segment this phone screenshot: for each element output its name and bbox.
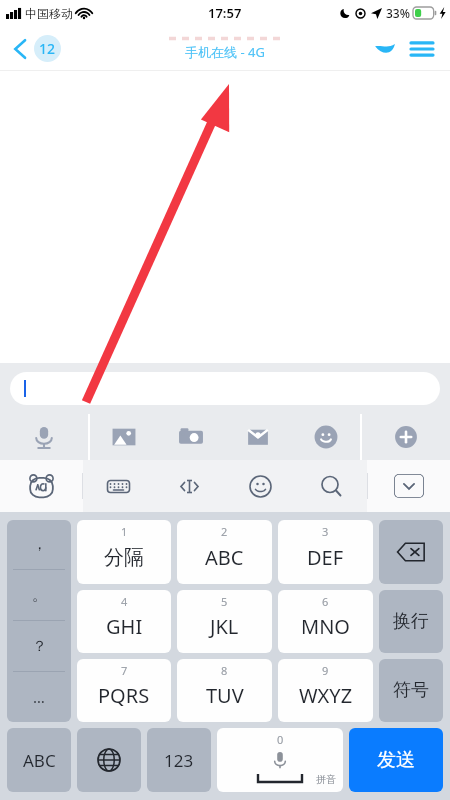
button[interactable]: … (7, 672, 71, 722)
staticText: 符号 (393, 679, 429, 702)
button[interactable]: ， (7, 520, 71, 569)
staticText: MNO (301, 613, 350, 640)
staticText: 123 (164, 749, 194, 772)
staticText: 发送 (377, 748, 415, 772)
button[interactable]: Send (349, 728, 443, 792)
button[interactable]: Search (296, 460, 367, 512)
button[interactable]: 换行 (379, 590, 443, 653)
button[interactable]: Menu (406, 33, 438, 65)
staticText: 3 (322, 524, 329, 539)
button[interactable]: 符号 (379, 659, 443, 722)
staticText: 2 (221, 524, 228, 539)
button[interactable]: Back, 12 unread (10, 31, 65, 66)
button[interactable]: 1 (77, 520, 171, 584)
staticText: … (33, 687, 45, 707)
staticText: 12 (39, 39, 56, 58)
button[interactable]: 5 (177, 590, 272, 653)
button[interactable]: 2 (177, 520, 272, 584)
staticText: 9 (322, 663, 329, 678)
staticText: 17:57 (208, 4, 242, 22)
button[interactable]: ？ (7, 621, 71, 671)
staticText: 拼音 (316, 773, 336, 786)
staticText: 。 (32, 586, 47, 605)
staticText: PQRS (98, 682, 150, 709)
button[interactable]: 8 (177, 659, 272, 722)
button[interactable]: 6 (278, 590, 373, 653)
button[interactable]: Emoji (292, 414, 360, 460)
button[interactable]: 4 (77, 590, 171, 653)
button[interactable]: Keyboard (83, 460, 154, 512)
staticText: 0 (277, 732, 284, 747)
staticText: ABC (205, 544, 244, 571)
button[interactable]: Move cursor (154, 460, 225, 512)
staticText: 分隔 (104, 545, 144, 570)
staticText: 中国移动 (25, 6, 73, 21)
button[interactable]: 123 (147, 728, 211, 792)
staticText: WXYZ (299, 682, 353, 709)
staticText: TUV (206, 682, 244, 709)
button[interactable]: 9 (278, 659, 373, 722)
staticText: 5 (221, 594, 228, 609)
staticText: GHI (106, 613, 143, 640)
button[interactable]: Space, voice input (217, 728, 343, 792)
staticText: 33% (386, 5, 410, 21)
staticText: 8 (221, 663, 228, 678)
staticText: 4 (121, 594, 128, 609)
button[interactable]: ABC (7, 728, 71, 792)
button[interactable]: Message input (10, 372, 440, 405)
button[interactable]: Baidu input (0, 460, 82, 512)
button[interactable]: 。 (7, 570, 71, 620)
button[interactable]: Switch language (77, 728, 141, 792)
button[interactable]: Photo (90, 414, 157, 460)
staticText: ABC (23, 749, 56, 772)
button[interactable]: Voice message (0, 414, 88, 460)
staticText: 1 (121, 524, 128, 539)
staticText: ？ (32, 637, 47, 656)
staticText: 换行 (393, 610, 429, 633)
staticText: 手机在线 - 4G (185, 43, 265, 61)
staticText: DEF (307, 544, 344, 571)
button[interactable]: Emoji (225, 460, 296, 512)
staticText: 7 (121, 663, 128, 678)
staticText: ， (32, 535, 47, 554)
staticText: 6 (322, 594, 329, 609)
button[interactable]: Backspace (379, 520, 443, 584)
button[interactable]: Hide keyboard (368, 460, 450, 512)
button[interactable]: 7 (77, 659, 171, 722)
button[interactable]: 3 (278, 520, 373, 584)
button[interactable]: Mail (224, 414, 292, 460)
button[interactable]: Camera (157, 414, 224, 460)
button[interactable]: More (362, 414, 450, 460)
staticText: JKL (210, 613, 239, 640)
button[interactable]: Voice (370, 34, 400, 64)
